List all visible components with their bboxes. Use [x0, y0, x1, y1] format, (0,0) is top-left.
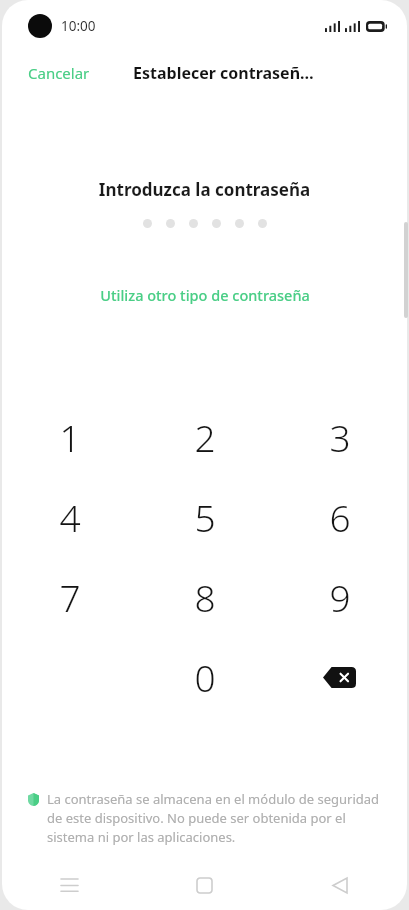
staticText: 2: [194, 412, 216, 462]
staticText: Cancelar: [28, 63, 90, 83]
staticText: Utiliza otro tipo de contraseña: [100, 285, 310, 305]
staticText: 9: [329, 572, 351, 622]
button[interactable]: Cancelar: [2, 57, 100, 89]
button[interactable]: 5: [137, 477, 272, 557]
button[interactable]: 8: [137, 557, 272, 637]
button[interactable]: Recientes: [2, 860, 137, 910]
staticText: 8: [194, 572, 216, 622]
staticText: 1: [59, 412, 81, 462]
staticText: 0: [194, 652, 216, 702]
button[interactable]: 0: [137, 637, 272, 717]
button[interactable]: Inicio: [137, 860, 272, 910]
staticText: 10:00: [61, 17, 96, 35]
button[interactable]: 3: [272, 397, 407, 477]
staticText: 5: [194, 492, 216, 542]
button[interactable]: Borrar: [272, 637, 407, 717]
button[interactable]: 9: [272, 557, 407, 637]
staticText: Establecer contraseñ…: [133, 62, 314, 84]
staticText: La contraseña se almacena en el módulo d…: [47, 790, 381, 846]
button[interactable]: 7: [2, 557, 137, 637]
button[interactable]: Utiliza otro tipo de contraseña: [2, 281, 407, 309]
button[interactable]: Atrás: [272, 860, 407, 910]
staticText: 4: [59, 492, 81, 542]
staticText: 7: [59, 572, 81, 622]
staticText: 6: [329, 492, 351, 542]
staticText: 3: [329, 412, 351, 462]
button[interactable]: 1: [2, 397, 137, 477]
staticText: Introduzca la contraseña: [2, 178, 407, 201]
button[interactable]: 6: [272, 477, 407, 557]
button[interactable]: 4: [2, 477, 137, 557]
button[interactable]: 2: [137, 397, 272, 477]
